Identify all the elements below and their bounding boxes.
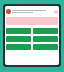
other: Avatar	[6, 9, 11, 14]
button[interactable]	[33, 36, 58, 42]
button[interactable]	[33, 44, 58, 50]
button[interactable]	[33, 28, 58, 34]
button[interactable]	[6, 36, 31, 42]
button[interactable]	[6, 44, 31, 50]
button[interactable]	[6, 28, 31, 34]
